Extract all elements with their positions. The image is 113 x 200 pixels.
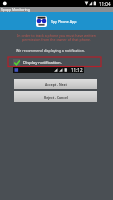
staticText: In order to track a phone you must have … — [0, 33, 113, 42]
staticText: Accept - Next — [45, 82, 67, 86]
staticText: 11:04 — [99, 1, 111, 7]
staticText: Spy Phone App — [51, 19, 77, 24]
staticText: Spapp Monitoring — [1, 7, 30, 12]
staticText: Display notification. — [23, 60, 62, 66]
staticText: 11:12 — [71, 67, 83, 73]
button[interactable]: Display notification. — [13, 59, 62, 66]
staticText: Reject - Cancel — [44, 95, 68, 99]
button[interactable]: Reject - Cancel — [14, 91, 97, 102]
button[interactable]: Accept - Next — [14, 79, 97, 89]
staticText: We recommend displaying a notification. — [16, 48, 85, 53]
